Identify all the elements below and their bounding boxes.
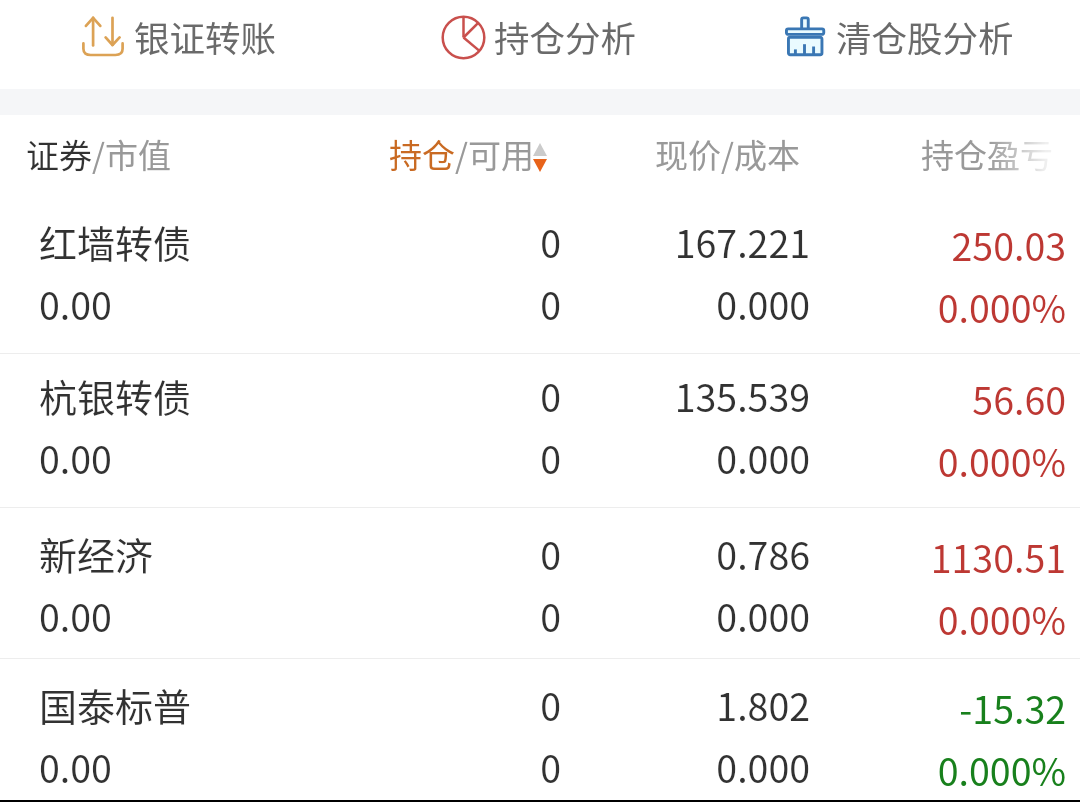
staticText: 0.000% bbox=[846, 279, 1066, 333]
staticText: 1130.51 bbox=[846, 529, 1066, 583]
staticText: 杭银转债 bbox=[39, 368, 192, 423]
button[interactable]: 现价/成本 bbox=[640, 123, 806, 189]
button[interactable]: 银证转账 bbox=[76, 2, 286, 86]
staticText: 清仓股分析 bbox=[836, 11, 1014, 62]
button[interactable]: 证券/市值 bbox=[26, 130, 171, 178]
button[interactable]: 清仓股分析 bbox=[779, 2, 1023, 86]
staticText: 0.000% bbox=[846, 433, 1066, 487]
staticText: 135.539 bbox=[610, 368, 810, 422]
staticText: 0.000 bbox=[610, 739, 810, 793]
staticText: 167.221 bbox=[610, 214, 810, 268]
staticText: 红墙转债 bbox=[39, 214, 192, 269]
staticText: 56.60 bbox=[846, 371, 1066, 425]
staticText: 现价/成本 bbox=[655, 130, 800, 178]
staticText: 0.000 bbox=[610, 588, 810, 642]
staticText: 0.00 bbox=[39, 430, 112, 484]
staticText: -15.32 bbox=[846, 680, 1066, 734]
staticText: 0.00 bbox=[39, 588, 112, 642]
button[interactable]: 持仓/可用 bbox=[384, 123, 552, 189]
staticText: 0 bbox=[401, 739, 561, 793]
staticText: 0.000 bbox=[610, 276, 810, 330]
staticText: 持仓分析 bbox=[494, 11, 637, 62]
staticText: 0 bbox=[401, 214, 561, 268]
staticText: 持仓/可用 bbox=[389, 130, 534, 178]
staticText: 0 bbox=[401, 588, 561, 642]
staticText: 0.00 bbox=[39, 276, 112, 330]
button[interactable]: 持仓分析 bbox=[436, 2, 644, 86]
staticText: 银证转账 bbox=[134, 11, 277, 62]
button[interactable]: 国泰标普 bbox=[0, 659, 1080, 799]
staticText: 0 bbox=[401, 677, 561, 731]
staticText: 250.03 bbox=[846, 217, 1066, 271]
staticText: 0 bbox=[401, 276, 561, 330]
staticText: 国泰标普 bbox=[39, 677, 192, 732]
button[interactable]: 持仓盈亏 bbox=[905, 123, 1065, 189]
staticText: 0 bbox=[401, 368, 561, 422]
staticText: 0.00 bbox=[39, 739, 112, 793]
staticText: 0.000% bbox=[846, 742, 1066, 796]
button[interactable]: 红墙转债 bbox=[0, 201, 1080, 353]
staticText: 0 bbox=[401, 430, 561, 484]
staticText: 0.000 bbox=[610, 430, 810, 484]
staticText: 持仓盈亏 bbox=[921, 130, 1053, 178]
staticText: 0 bbox=[401, 526, 561, 580]
staticText: 新经济 bbox=[39, 526, 154, 581]
button[interactable]: 杭银转债 bbox=[0, 354, 1080, 507]
staticText: 1.802 bbox=[610, 677, 810, 731]
button[interactable]: 新经济 bbox=[0, 508, 1080, 658]
staticText: 0.786 bbox=[610, 526, 810, 580]
staticText: 0.000% bbox=[846, 591, 1066, 645]
